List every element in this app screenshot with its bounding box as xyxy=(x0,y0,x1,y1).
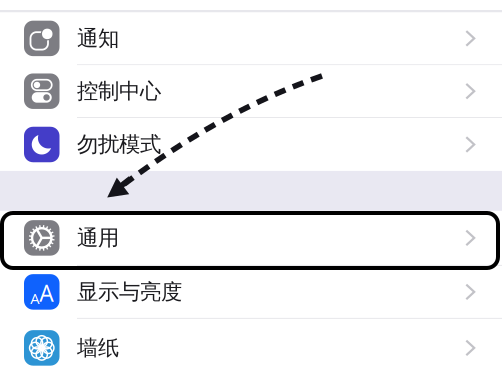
staticText: 通知 xyxy=(77,25,119,51)
button[interactable]: A xyxy=(0,266,502,319)
staticText: A xyxy=(39,278,53,308)
button[interactable]: 墙纸 xyxy=(0,319,502,377)
staticText: A xyxy=(30,288,39,308)
button[interactable]: 通知 xyxy=(0,12,502,65)
staticText: 显示与亮度 xyxy=(77,279,182,305)
button[interactable]: 控制中心 xyxy=(0,65,502,118)
staticText: 勿扰模式 xyxy=(77,131,161,158)
button[interactable]: 通用 xyxy=(0,211,502,266)
staticText: 通用 xyxy=(77,225,119,251)
staticText: 墙纸 xyxy=(77,335,119,361)
staticText: 控制中心 xyxy=(77,78,161,104)
button[interactable]: 勿扰模式 xyxy=(0,118,502,171)
